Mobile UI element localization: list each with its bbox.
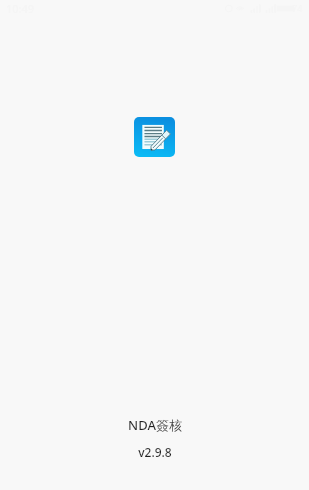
staticText: NDA簽核 [128, 416, 182, 434]
other: NDA簽核 app icon [134, 117, 175, 157]
staticText: v2.9.8 [138, 444, 172, 460]
